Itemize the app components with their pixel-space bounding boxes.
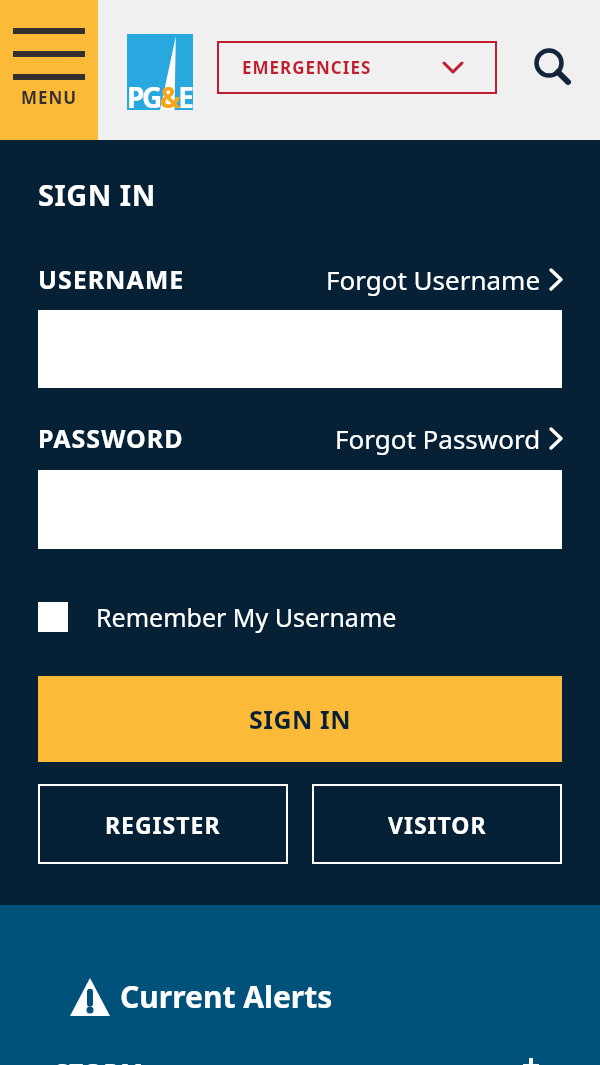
- button[interactable]: Current Alerts: [70, 976, 333, 1017]
- staticText: STORM: [55, 1055, 144, 1065]
- staticText: Remember My Username: [96, 600, 397, 634]
- staticText: REGISTER: [105, 809, 221, 840]
- staticText: PG&E: [127, 78, 192, 116]
- button[interactable]: Remember My Username: [38, 600, 397, 634]
- button[interactable]: VISITOR: [312, 784, 562, 864]
- button[interactable]: Forgot Username: [0, 262, 562, 297]
- button[interactable]: MENU: [0, 0, 98, 140]
- staticText: EMERGENCIES: [242, 56, 372, 79]
- staticText: Forgot Password: [335, 421, 541, 456]
- staticText: Current Alerts: [120, 976, 333, 1017]
- button[interactable]: [497, 0, 600, 140]
- staticText: PASSWORD: [38, 421, 184, 455]
- button[interactable]: Forgot Password: [0, 421, 562, 456]
- staticText: MENU: [21, 86, 78, 109]
- staticText: SIGN IN: [249, 702, 351, 736]
- staticText: SIGN IN: [38, 175, 156, 214]
- button[interactable]: SIGN IN: [38, 676, 562, 762]
- staticText: Forgot Username: [326, 262, 541, 297]
- staticText: USERNAME: [38, 262, 185, 296]
- button[interactable]: REGISTER: [38, 784, 288, 864]
- staticText: VISITOR: [388, 809, 487, 840]
- button[interactable]: EMERGENCIES: [217, 41, 497, 94]
